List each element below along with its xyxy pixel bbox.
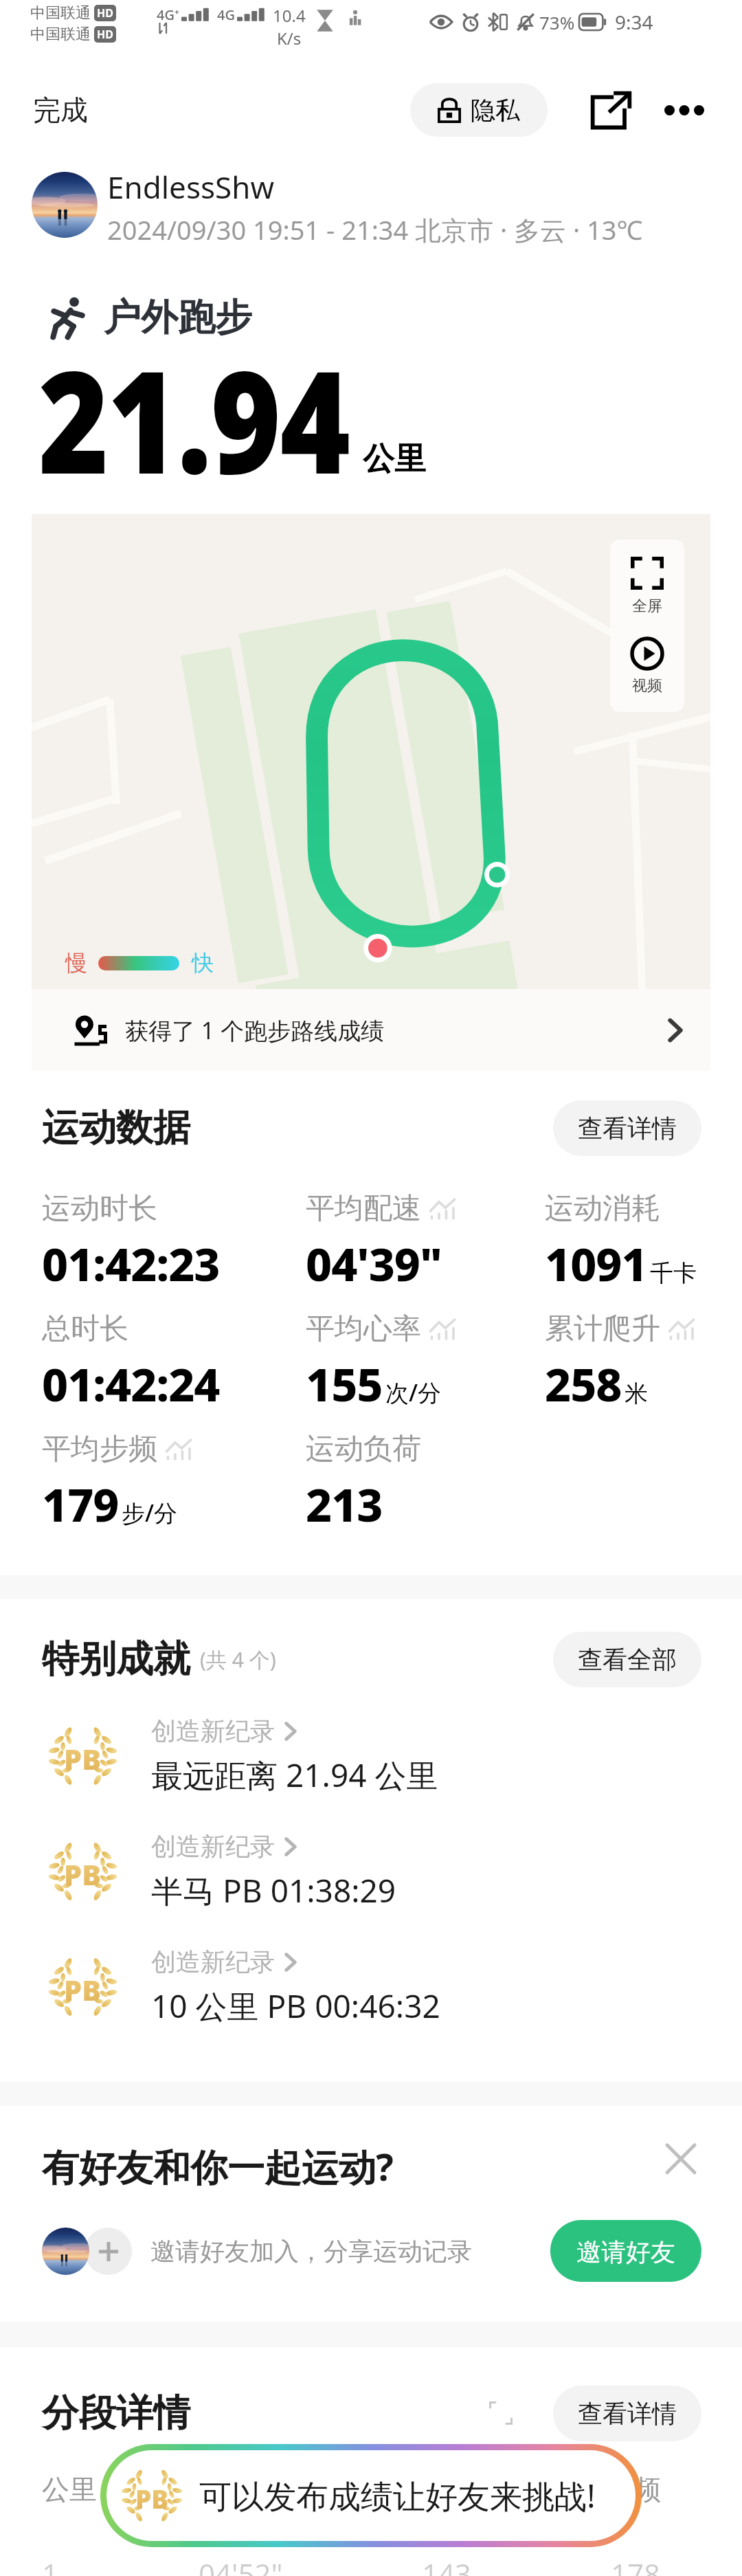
staticText: PB [64,1855,102,1894]
staticText: 运动负荷 [306,1431,421,1467]
staticText: 户外跑步 [104,294,252,341]
staticText: 178 [611,2554,661,2576]
staticText: HD [97,5,113,21]
staticText: 143 [422,2554,472,2576]
staticText: 公里 [363,439,426,479]
staticText: PB [64,1740,102,1778]
staticText: 完成 [33,93,88,127]
staticText: 获得了 1 个跑步路线成绩 [125,1014,385,1046]
staticText: 快 [192,949,214,977]
staticText: 特别成就 [42,1636,190,1683]
button[interactable]: 全屏 [610,540,684,627]
staticText: 2024/09/30 19:51 - 21:34 北京市 · 多云 · 13℃ [107,212,643,243]
staticText: 创造新纪录 [151,1831,275,1862]
staticText: 隐私 [471,95,520,126]
staticText: 邀请好友加入，分享运动记录 [150,2236,472,2267]
staticText: 查看全部 [578,1644,677,1675]
staticText: 配速 [225,2472,280,2507]
button[interactable]: 完成 [23,86,98,134]
staticText: 慢 [65,949,87,977]
staticText: 179 [42,1473,119,1534]
staticText: 查看详情 [578,2398,677,2429]
button[interactable]: 获得了 1 个跑步路线成绩 [32,989,710,1071]
button[interactable]: 隐私 [410,83,548,137]
staticText: 04'52" [199,2554,283,2576]
button[interactable]: 邀请好友 [550,2220,701,2282]
staticText: 米 [625,1379,648,1408]
button[interactable]: PB [106,2450,636,2541]
staticText: 最远距离 21.94 公里 [151,1753,438,1797]
staticText: 半马 PB 01:38:29 [151,1869,396,1912]
staticText: 运动消耗 [545,1190,660,1227]
staticText: 中国联通 [30,3,91,23]
staticText: 视频 [632,676,662,696]
staticText: 邀请好友 [576,2236,675,2265]
staticText: 有好友和你一起运动? [42,2141,394,2192]
button[interactable]: PB [45,1705,701,1808]
staticText: 步/分 [122,1497,178,1529]
button[interactable]: EndlessShw [32,166,715,243]
staticText: 中国联通 [30,25,91,44]
staticText: 平均步频 [42,1431,157,1467]
button[interactable]: 查看详情 [553,2386,701,2441]
staticText: 千卡 [650,1258,697,1288]
staticText: 运动数据 [42,1104,190,1151]
staticText: 公里 [42,2472,97,2507]
staticText: 创造新纪录 [151,1716,275,1746]
staticText: (共 4 个) [200,1645,276,1674]
staticText: 01:42:23 [42,1232,220,1293]
button[interactable]: More options [658,84,710,136]
staticText: 可以发布成绩让好友来挑战! [199,2474,596,2518]
staticText: 4G⁺ [157,5,179,24]
staticText: 心率 [416,2472,471,2507]
button[interactable]: 视频 [610,627,684,712]
staticText: 21.94 [38,322,350,515]
staticText: 155 [306,1353,383,1414]
button[interactable]: PB [45,1935,701,2039]
staticText: 平均配速 [306,1190,421,1227]
button[interactable]: Share [585,84,637,136]
staticText: 1 [42,2554,59,2576]
staticText: EndlessShw [107,166,274,208]
staticText: 次/分 [385,1377,442,1408]
button[interactable]: Expand [479,2391,523,2435]
staticText: 步频 [606,2472,661,2507]
staticText: 累计爬升 [545,1311,660,1347]
staticText: HD [97,27,113,42]
staticText: 73% [539,10,575,34]
staticText: 运动时长 [42,1190,157,1227]
staticText: 10.4 [273,4,306,27]
staticText: 创造新纪录 [151,1946,275,1977]
staticText: 258 [545,1353,622,1414]
staticText: 查看详情 [578,1113,677,1144]
button[interactable]: 查看详情 [553,1100,701,1156]
staticText: 总时长 [42,1311,128,1347]
button[interactable]: 查看全部 [553,1632,701,1687]
staticText: 平均心率 [306,1311,421,1347]
staticText: 全屏 [632,597,662,616]
staticText: 分段详情 [42,2390,190,2436]
button[interactable]: Close [660,2138,701,2179]
staticText: 01:42:24 [42,1353,220,1414]
staticText: 04'39" [306,1232,442,1293]
staticText: 9:34 [615,9,653,35]
staticText: 1091 [545,1232,647,1293]
staticText: PB [135,2481,169,2516]
staticText: 213 [306,1473,383,1534]
staticText: K/s [277,27,302,48]
staticText: PB [64,1970,102,2009]
button[interactable]: PB [45,1820,701,1923]
staticText: 10 公里 PB 00:46:32 [151,1984,440,2028]
staticText: 4G [217,5,235,24]
